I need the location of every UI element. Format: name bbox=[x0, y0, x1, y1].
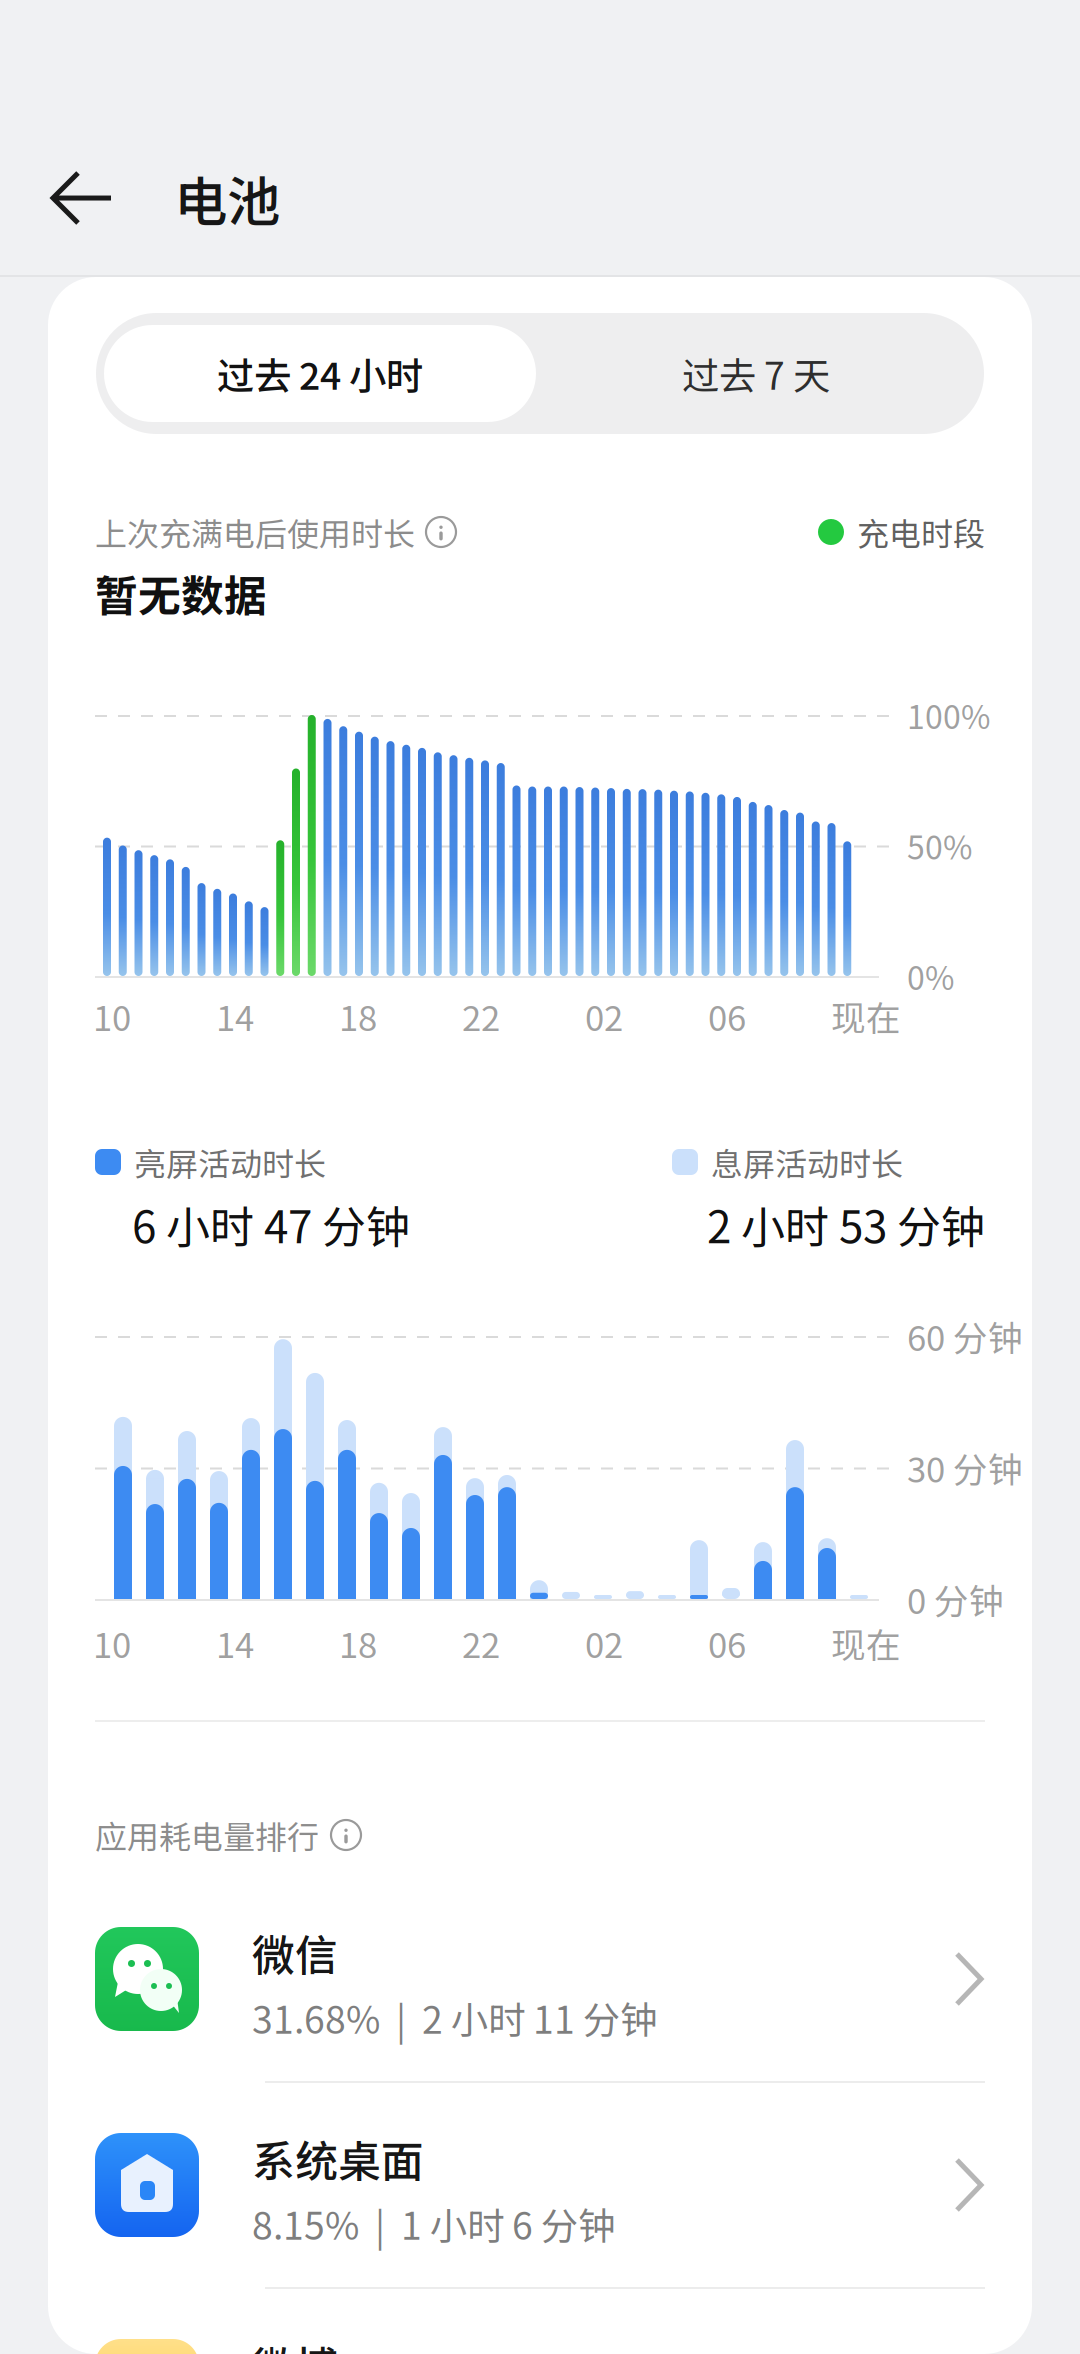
staticText: 31.68% | 2 小时 11 分钟 bbox=[252, 1990, 657, 2044]
staticText: 02 bbox=[585, 1618, 623, 1668]
staticText: 现在 bbox=[831, 1618, 901, 1668]
staticText: 02 bbox=[585, 991, 623, 1041]
staticText: 22 bbox=[462, 1618, 500, 1668]
staticText: 现在 bbox=[831, 991, 901, 1041]
staticText: 18 bbox=[339, 1618, 377, 1668]
staticText: 微博 bbox=[252, 2334, 338, 2354]
staticText: 过去 24 小时 bbox=[217, 346, 423, 401]
staticText: 系统桌面 bbox=[252, 2128, 424, 2189]
staticText: 60 分钟 bbox=[907, 1311, 1023, 1361]
staticText: 100% bbox=[907, 692, 990, 738]
staticText: 30 分钟 bbox=[907, 1442, 1023, 1493]
staticText: 22 bbox=[462, 991, 500, 1041]
button[interactable]: 过去 24 小时 bbox=[104, 325, 536, 422]
staticText: 10 bbox=[93, 991, 131, 1041]
staticText: 电池 bbox=[174, 159, 280, 237]
staticText: 息屏活动时长 bbox=[711, 1139, 903, 1185]
staticText: 8.15% | 1 小时 6 分钟 bbox=[252, 2196, 615, 2250]
button[interactable]: 返回 bbox=[0, 148, 174, 248]
staticText: 暂无数据 bbox=[95, 562, 267, 624]
staticText: 6 小时 47 分钟 bbox=[132, 1192, 410, 1256]
staticText: 2 小时 53 分钟 bbox=[707, 1192, 985, 1256]
staticText: 06 bbox=[708, 1618, 746, 1668]
button[interactable]: 微信 bbox=[95, 1927, 985, 2133]
staticText: 上次充满电后使用时长 bbox=[95, 509, 415, 555]
staticText: 50% bbox=[907, 822, 972, 869]
button[interactable]: 微博 bbox=[95, 2339, 985, 2354]
staticText: 10 bbox=[93, 1618, 131, 1668]
button[interactable]: 系统桌面 bbox=[95, 2133, 985, 2339]
staticText: 微信 bbox=[252, 1922, 338, 1983]
staticText: 亮屏活动时长 bbox=[134, 1139, 326, 1185]
staticText: 过去 7 天 bbox=[682, 346, 830, 401]
staticText: 14 bbox=[216, 991, 254, 1041]
staticText: 充电时段 bbox=[857, 509, 985, 555]
button[interactable]: 过去 7 天 bbox=[536, 325, 976, 422]
staticText: 14 bbox=[216, 1618, 254, 1668]
staticText: 应用耗电量排行 bbox=[95, 1812, 319, 1858]
staticText: 0 分钟 bbox=[907, 1574, 1004, 1624]
staticText: 0% bbox=[907, 953, 954, 999]
staticText: 06 bbox=[708, 991, 746, 1041]
staticText: 18 bbox=[339, 991, 377, 1041]
